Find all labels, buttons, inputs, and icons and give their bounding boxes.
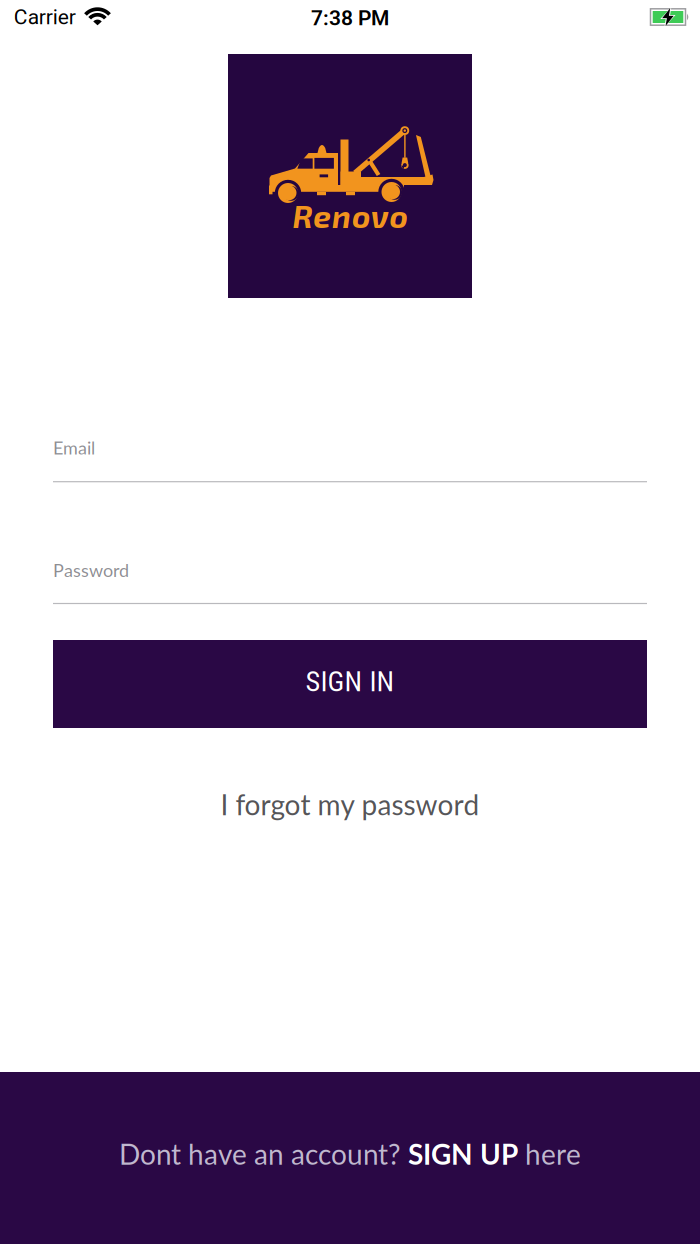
staticText: Renovo xyxy=(292,197,407,234)
button[interactable]: Dont have an account? xyxy=(0,1072,700,1244)
staticText: I forgot my password xyxy=(220,788,479,821)
button[interactable]: I forgot my password xyxy=(220,788,479,821)
staticText: SIGN UP xyxy=(408,1137,518,1171)
button[interactable]: Password xyxy=(53,555,647,585)
staticText: Email xyxy=(53,437,95,458)
staticText: 7:38 PM xyxy=(311,6,389,30)
button[interactable]: SIGN IN xyxy=(53,640,647,728)
staticText: Dont have an account? xyxy=(119,1137,408,1171)
staticText: SIGN IN xyxy=(305,665,394,698)
staticText: here xyxy=(518,1137,581,1171)
button[interactable]: Email xyxy=(53,432,647,462)
staticText: Carrier xyxy=(14,5,76,29)
staticText: Password xyxy=(53,559,129,581)
